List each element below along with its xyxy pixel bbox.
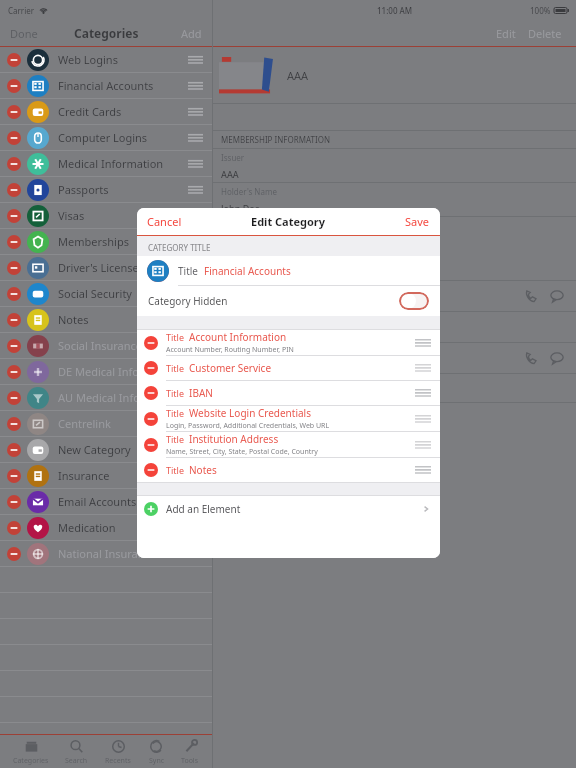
staticText: Account Information	[189, 330, 287, 344]
staticText: Title	[166, 433, 184, 445]
button[interactable]: Email Accounts	[0, 489, 212, 514]
button[interactable]: Edit	[490, 22, 522, 45]
staticText: Social Security	[58, 286, 188, 301]
staticText: Financial Accounts	[58, 78, 188, 93]
staticText: Add an Element	[166, 502, 422, 516]
button[interactable]: Notes	[0, 307, 212, 332]
button[interactable]: Title	[137, 381, 440, 405]
button[interactable]: DE Medical Informa	[0, 359, 212, 384]
button[interactable]: Medication	[0, 515, 212, 540]
staticText: Issuer	[221, 152, 245, 163]
button[interactable]: Categories	[9, 736, 53, 768]
staticText: Medication	[58, 520, 188, 535]
staticText: Title	[166, 387, 184, 399]
button[interactable]: Save	[395, 209, 440, 234]
staticText: Name, Street, City, State, Postal Code, …	[166, 447, 318, 457]
button[interactable]: Sync	[144, 736, 169, 768]
staticText: Categories	[74, 25, 139, 41]
button[interactable]: Social Insurance	[0, 333, 212, 358]
button[interactable]: Category Hidden toggle	[399, 292, 429, 310]
button[interactable]: Title	[137, 432, 440, 457]
staticText: Institution Address	[189, 432, 279, 446]
button[interactable]: Title	[137, 330, 440, 355]
staticText: Done	[10, 26, 38, 41]
staticText: MEMBERSHIP INFORMATION	[221, 134, 330, 145]
button[interactable]: Call	[518, 283, 544, 309]
button[interactable]: Message	[544, 283, 570, 309]
staticText: Title	[178, 264, 198, 278]
staticText: Add	[181, 26, 202, 41]
staticText: Edit Category	[251, 214, 326, 229]
button[interactable]: Social Security	[0, 281, 212, 306]
staticText: Website Login Credentials	[189, 406, 311, 420]
button[interactable]: Add an Element	[137, 496, 440, 522]
staticText: Search	[65, 756, 88, 766]
staticText: Memberships	[58, 234, 188, 249]
staticText: Cancel	[147, 214, 182, 229]
staticText: IBAN	[189, 386, 213, 400]
button[interactable]: Web Logins	[0, 47, 212, 72]
staticText: Computer Logins	[58, 130, 188, 145]
staticText: Card Number	[221, 220, 272, 231]
staticText: Recents	[105, 756, 131, 766]
button[interactable]: Memberships	[0, 229, 212, 254]
button[interactable]: Credit Cards	[0, 99, 212, 124]
button[interactable]: Computer Logins	[0, 125, 212, 150]
staticText: Categories	[13, 756, 49, 766]
staticText: 100%	[530, 5, 551, 16]
button[interactable]: Financial Accounts	[0, 73, 212, 98]
button[interactable]: Passports	[0, 177, 212, 202]
button[interactable]: Category Hidden	[137, 286, 440, 316]
button[interactable]: Medical Information	[0, 151, 212, 176]
staticText: Delete	[528, 26, 562, 41]
button[interactable]: Driver's Licenses	[0, 255, 212, 280]
button[interactable]: Delete	[522, 22, 568, 45]
staticText: Social Insurance	[58, 338, 188, 353]
staticText: Web Logins	[58, 52, 188, 67]
staticText: Edit	[496, 26, 516, 41]
button[interactable]: Search	[61, 736, 92, 768]
staticText: Driver's Licenses	[58, 260, 188, 275]
staticText: Title	[166, 407, 184, 419]
staticText: AAA	[287, 68, 309, 83]
staticText: National Insurance	[58, 546, 188, 561]
staticText: Category Hidden	[148, 294, 399, 308]
staticText: Medical Information	[58, 156, 188, 171]
staticText: Notes	[58, 312, 188, 327]
staticText: Insurance	[58, 468, 188, 483]
button[interactable]: Title	[137, 256, 440, 285]
button[interactable]: Recents	[101, 736, 135, 768]
button[interactable]: Add	[171, 22, 212, 45]
button[interactable]: Title	[137, 356, 440, 380]
button[interactable]: Cancel	[137, 209, 192, 234]
button[interactable]: AU Medical Informa	[0, 385, 212, 410]
staticText: Passports	[58, 182, 188, 197]
button[interactable]: Centrelink	[0, 411, 212, 436]
staticText: Carrier	[8, 5, 35, 16]
staticText: Title	[166, 464, 184, 476]
staticText: Sync	[149, 756, 165, 766]
staticText: Credit Cards	[58, 104, 188, 119]
staticText: AAA	[221, 168, 239, 180]
staticText: Tools	[181, 756, 199, 766]
staticText: AU Medical Informa	[58, 390, 188, 405]
staticText: New Category	[58, 442, 188, 457]
staticText: Email Accounts	[58, 494, 188, 509]
staticText: Holder's Name	[221, 186, 277, 197]
button[interactable]: Call	[518, 345, 544, 371]
staticText: Financial Accounts	[204, 264, 291, 278]
button[interactable]: Done	[0, 22, 48, 45]
button[interactable]: Title	[137, 406, 440, 431]
button[interactable]: New Category	[0, 437, 212, 462]
button[interactable]: National Insurance	[0, 541, 212, 566]
button[interactable]: Message	[544, 345, 570, 371]
button[interactable]: Title	[137, 458, 440, 482]
staticText: Title	[166, 362, 184, 374]
staticText: Centrelink	[58, 416, 188, 431]
button[interactable]: Tools	[177, 736, 203, 768]
button[interactable]: Insurance	[0, 463, 212, 488]
staticText: Login, Password, Additional Credentials,…	[166, 421, 330, 431]
staticText: Visas	[58, 208, 188, 223]
button[interactable]: Visas	[0, 203, 212, 228]
